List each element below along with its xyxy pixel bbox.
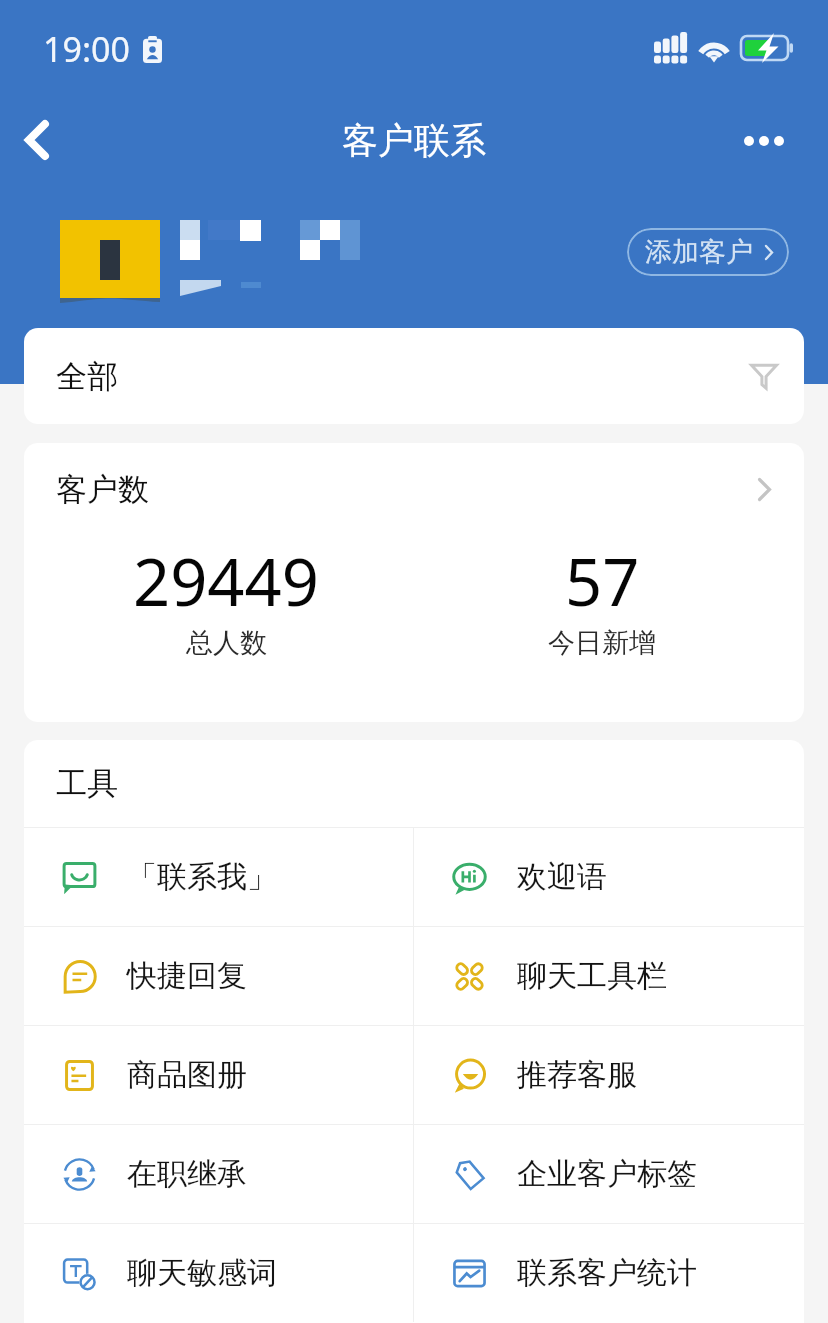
staticText: 29449 bbox=[133, 537, 319, 626]
staticText: 推荐客服 bbox=[517, 1056, 637, 1094]
staticText: 在职继承 bbox=[127, 1155, 247, 1193]
button[interactable]: 客户数 bbox=[24, 443, 804, 535]
button[interactable]: 欢迎语 bbox=[414, 828, 804, 926]
button[interactable]: 快捷回复 bbox=[24, 927, 413, 1025]
staticText: 聊天工具栏 bbox=[517, 957, 667, 995]
button[interactable]: 企业客户标签 bbox=[414, 1125, 804, 1223]
button[interactable]: 添加客户 bbox=[627, 228, 789, 276]
staticText: 客户联系 bbox=[342, 118, 486, 163]
staticText: 企业客户标签 bbox=[517, 1155, 697, 1193]
staticText: 快捷回复 bbox=[127, 957, 247, 995]
staticText: 商品图册 bbox=[127, 1056, 247, 1094]
button[interactable]: 推荐客服 bbox=[414, 1026, 804, 1124]
staticText: 添加客户 bbox=[645, 235, 753, 269]
button[interactable]: 57 bbox=[414, 537, 790, 660]
staticText: 「联系我」 bbox=[127, 858, 277, 896]
staticText: 今日新增 bbox=[548, 626, 656, 660]
staticText: 全部 bbox=[56, 357, 118, 396]
button[interactable]: Back bbox=[0, 100, 80, 180]
button[interactable]: 商品图册 bbox=[24, 1026, 413, 1124]
staticText: 聊天敏感词 bbox=[127, 1254, 277, 1292]
button[interactable]: 聊天工具栏 bbox=[414, 927, 804, 1025]
button[interactable]: 在职继承 bbox=[24, 1125, 413, 1223]
button[interactable]: 29449 bbox=[38, 537, 414, 660]
button[interactable]: 聊天敏感词 bbox=[24, 1224, 413, 1322]
staticText: 客户数 bbox=[56, 470, 149, 509]
staticText: 欢迎语 bbox=[517, 858, 607, 896]
button[interactable]: 全部 bbox=[24, 328, 804, 424]
button[interactable]: More options bbox=[734, 93, 828, 187]
staticText: 总人数 bbox=[186, 626, 267, 660]
staticText: 工具 bbox=[56, 764, 118, 803]
button[interactable]: 联系客户统计 bbox=[414, 1224, 804, 1322]
staticText: 19:00 bbox=[43, 26, 130, 72]
staticText: 57 bbox=[565, 537, 640, 626]
staticText: 联系客户统计 bbox=[517, 1254, 697, 1292]
button[interactable]: 「联系我」 bbox=[24, 828, 413, 926]
